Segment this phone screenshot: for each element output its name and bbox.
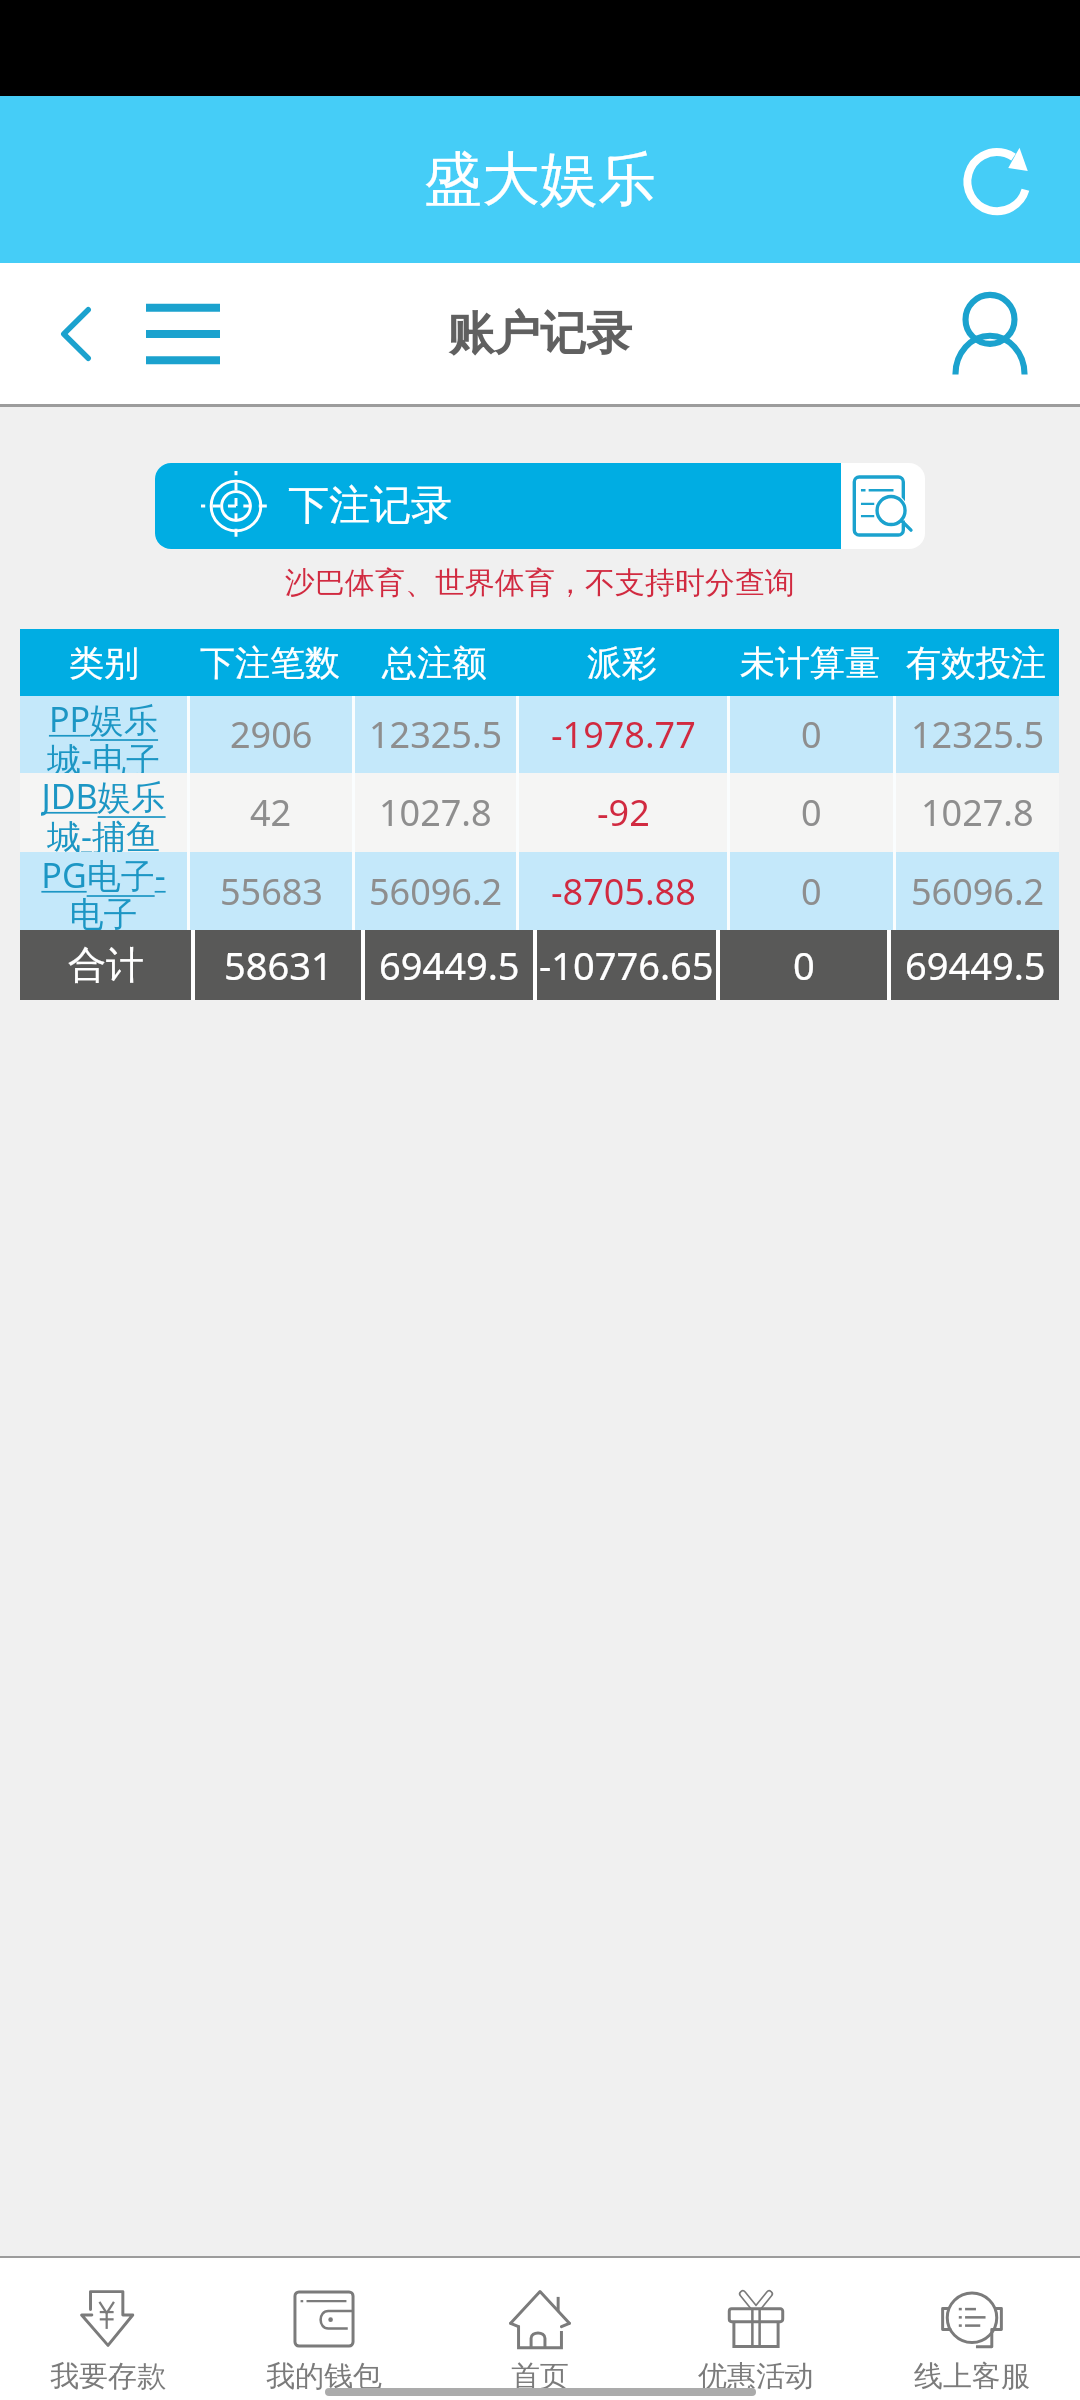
staticText: 1027.8: [921, 788, 1034, 837]
staticText: 56096.2: [369, 867, 503, 916]
staticText: 账户记录: [448, 305, 632, 363]
staticText: -1978.77: [551, 710, 696, 759]
button[interactable]: 首页: [432, 2258, 648, 2400]
staticText: 总注额: [382, 641, 487, 685]
button[interactable]: PG电子- 电子: [20, 852, 187, 930]
staticText: PP娱乐 城-电子: [47, 696, 160, 773]
staticText: -10776.65: [539, 939, 714, 991]
staticText: 派彩: [587, 641, 657, 685]
staticText: 0: [793, 939, 815, 991]
button[interactable]: Back: [40, 298, 112, 370]
button[interactable]: PP娱乐 城-电子: [20, 696, 187, 773]
staticText: 1027.8: [379, 788, 492, 837]
staticText: 有效投注: [906, 641, 1046, 685]
button[interactable]: 下注记录: [155, 463, 925, 549]
button[interactable]: 线上客服: [864, 2258, 1080, 2400]
staticText: 0: [801, 710, 822, 759]
staticText: 线上客服: [914, 2358, 1030, 2395]
staticText: 12325.5: [911, 710, 1045, 759]
staticText: 12325.5: [369, 710, 503, 759]
staticText: 58631: [224, 939, 333, 991]
staticText: JDB娱乐 城-捕鱼: [41, 773, 166, 852]
staticText: 合计: [68, 941, 144, 989]
button[interactable]: JDB娱乐 城-捕鱼: [20, 773, 187, 852]
staticText: -8705.88: [551, 867, 696, 916]
staticText: 69449.5: [905, 939, 1046, 991]
button[interactable]: Account: [940, 284, 1040, 384]
staticText: 沙巴体育、世界体育，不支持时分查询: [285, 564, 795, 602]
staticText: 首页: [511, 2358, 569, 2395]
staticText: -92: [597, 788, 650, 837]
staticText: 我要存款: [50, 2358, 166, 2395]
button[interactable]: 我的钱包: [216, 2258, 432, 2400]
staticText: 0: [801, 788, 822, 837]
staticText: 55683: [220, 867, 323, 916]
staticText: 0: [801, 867, 822, 916]
staticText: 未计算量: [740, 641, 880, 685]
staticText: 69449.5: [379, 939, 520, 991]
staticText: 类别: [69, 641, 139, 685]
staticText: 盛大娱乐: [424, 143, 656, 216]
staticText: 我的钱包: [266, 2358, 382, 2395]
staticText: 优惠活动: [698, 2358, 814, 2395]
button[interactable]: Refresh: [942, 125, 1052, 235]
staticText: 42: [250, 788, 292, 837]
staticText: 2906: [230, 710, 313, 759]
staticText: PG电子- 电子: [41, 852, 166, 930]
button[interactable]: 我要存款: [0, 2258, 216, 2400]
staticText: 下注笔数: [200, 641, 340, 685]
button[interactable]: 优惠活动: [648, 2258, 864, 2400]
button[interactable]: Menu: [138, 289, 228, 379]
staticText: 56096.2: [911, 867, 1045, 916]
staticText: 下注记录: [288, 480, 452, 532]
